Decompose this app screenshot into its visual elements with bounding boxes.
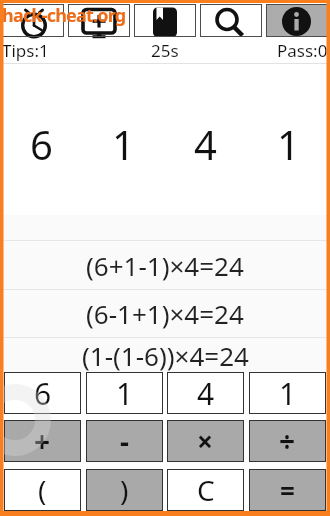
- button[interactable]: C: [167, 469, 244, 511]
- button[interactable]: [134, 4, 196, 37]
- button[interactable]: 4: [167, 372, 244, 414]
- staticText: (1-(1-6))×4=24: [82, 338, 249, 372]
- button[interactable]: (6+1-1)×4=24: [0, 241, 330, 289]
- button[interactable]: 6: [4, 372, 81, 414]
- staticText: ×: [197, 422, 214, 460]
- button[interactable]: =: [249, 469, 326, 511]
- button[interactable]: Tips:1: [2, 39, 49, 62]
- button[interactable]: [200, 4, 262, 37]
- staticText: =: [280, 473, 295, 508]
- staticText: 6: [34, 373, 52, 414]
- staticText: 1: [116, 373, 134, 414]
- button[interactable]: [68, 4, 130, 37]
- button[interactable]: (1-(1-6))×4=24: [0, 338, 330, 372]
- staticText: -: [120, 422, 129, 460]
- button[interactable]: ÷: [249, 420, 326, 462]
- staticText: 1: [277, 117, 300, 171]
- staticText: Tips:1: [2, 39, 49, 62]
- staticText: +: [34, 422, 51, 460]
- staticText: 4: [194, 117, 217, 171]
- staticText: 25s: [151, 39, 179, 62]
- button[interactable]: Pass:0: [277, 39, 328, 62]
- staticText: C: [197, 471, 215, 509]
- staticText: (6-1+1)×4=24: [86, 296, 244, 331]
- staticText: 1: [112, 117, 135, 171]
- button[interactable]: +: [4, 420, 81, 462]
- button[interactable]: ×: [167, 420, 244, 462]
- staticText: (6+1-1)×4=24: [86, 248, 244, 283]
- button[interactable]: ): [86, 469, 163, 511]
- staticText: 6: [30, 117, 53, 171]
- staticText: hack-cheat.org: [2, 3, 126, 28]
- button[interactable]: 1: [249, 372, 326, 414]
- staticText: Pass:0: [277, 39, 328, 62]
- staticText: 4: [197, 373, 215, 414]
- button[interactable]: -: [86, 420, 163, 462]
- button[interactable]: (: [4, 469, 81, 511]
- button[interactable]: (6-1+1)×4=24: [0, 290, 330, 337]
- staticText: (: [38, 471, 47, 509]
- staticText: ): [120, 471, 129, 509]
- button[interactable]: 1: [86, 372, 163, 414]
- button[interactable]: [266, 4, 328, 37]
- staticText: ÷: [279, 422, 296, 460]
- button[interactable]: [2, 4, 64, 37]
- staticText: 1: [279, 373, 297, 414]
